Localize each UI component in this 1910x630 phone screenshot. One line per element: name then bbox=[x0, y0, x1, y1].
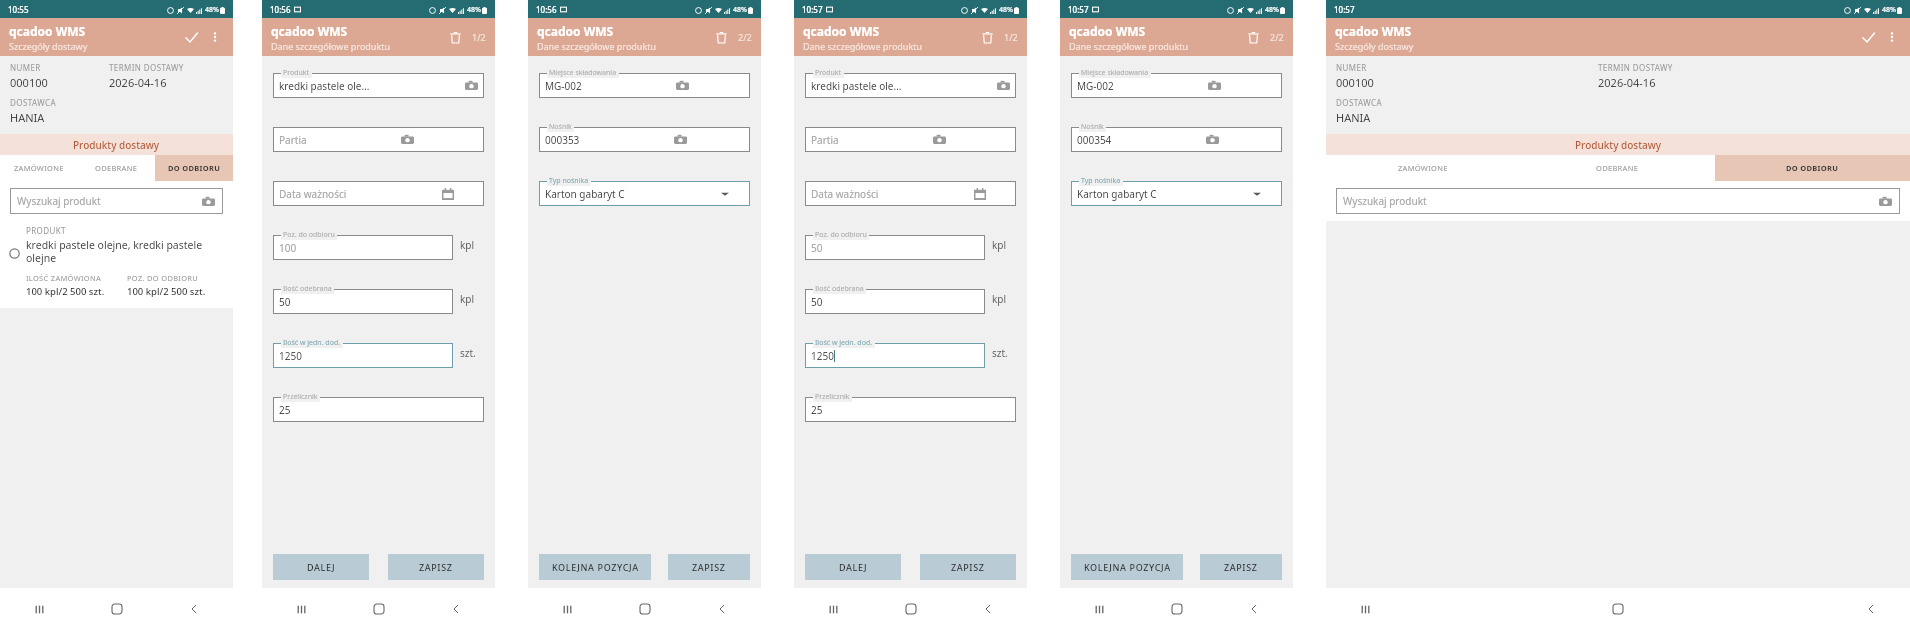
button[interactable]: ZAPISZ bbox=[668, 554, 750, 580]
button[interactable]: Home bbox=[104, 596, 130, 622]
button[interactable]: Scan bbox=[400, 132, 415, 147]
button[interactable]: PRODUKT bbox=[8, 225, 225, 298]
button[interactable]: Home bbox=[1164, 596, 1190, 622]
staticText: Ilość odebrana bbox=[815, 284, 864, 294]
button[interactable]: Recents bbox=[820, 596, 846, 622]
button[interactable]: Wyszukaj produkt bbox=[1343, 188, 1893, 214]
button[interactable]: ODEBRANE bbox=[1520, 155, 1715, 181]
button[interactable]: Scan bbox=[675, 78, 690, 93]
staticText: Produkty dostawy bbox=[73, 138, 160, 152]
button[interactable]: Recents bbox=[26, 596, 52, 622]
staticText: POZ. DO ODBIORU bbox=[127, 273, 199, 283]
staticText: 48% bbox=[1882, 5, 1896, 15]
button[interactable]: ZAMÓWIONE bbox=[1326, 155, 1520, 181]
button[interactable]: Back bbox=[709, 596, 735, 622]
staticText: KOLEJNA POZYCJA bbox=[552, 561, 639, 573]
staticText: Szczegóły dostawy bbox=[9, 40, 88, 52]
staticText: Karton gabaryt C bbox=[545, 187, 625, 201]
staticText: Dane szczegółowe produktu bbox=[537, 40, 657, 52]
button[interactable]: Back bbox=[1858, 596, 1884, 622]
button[interactable]: Home bbox=[632, 596, 658, 622]
button[interactable]: KOLEJNA POZYCJA bbox=[1071, 554, 1183, 580]
staticText: NUMER bbox=[10, 62, 41, 73]
button[interactable]: Scan bbox=[1207, 78, 1222, 93]
staticText: 48% bbox=[205, 5, 219, 15]
staticText: Data ważności bbox=[279, 187, 347, 201]
staticText: TERMIN DOSTAWY bbox=[1598, 62, 1673, 73]
staticText: 2026-04-16 bbox=[1598, 75, 1656, 90]
button[interactable]: Recents bbox=[1086, 596, 1112, 622]
staticText: ZAPISZ bbox=[692, 561, 726, 573]
button[interactable]: Delete bbox=[710, 26, 732, 48]
staticText: DOSTAWCA bbox=[10, 97, 56, 108]
staticText: Produkt bbox=[283, 68, 310, 78]
staticText: 50 bbox=[811, 241, 823, 255]
button[interactable]: Delete bbox=[976, 26, 998, 48]
button[interactable]: ZAPISZ bbox=[920, 554, 1016, 580]
button[interactable]: Scan bbox=[201, 194, 216, 209]
staticText: 10:57 bbox=[1068, 4, 1089, 15]
button[interactable]: Wyszukaj produkt bbox=[17, 188, 216, 214]
staticText: 1/2 bbox=[1004, 31, 1018, 43]
staticText: Dane szczegółowe produktu bbox=[803, 40, 923, 52]
staticText: ZAMÓWIONE bbox=[1398, 163, 1448, 173]
staticText: 10:55 bbox=[8, 4, 29, 15]
button[interactable]: DALEJ bbox=[273, 554, 369, 580]
button[interactable]: Scan bbox=[1205, 132, 1220, 147]
button[interactable]: Back bbox=[181, 596, 207, 622]
button[interactable]: Home bbox=[898, 596, 924, 622]
button[interactable]: Confirm bbox=[1857, 26, 1879, 48]
button[interactable]: Back bbox=[1241, 596, 1267, 622]
staticText: 10:57 bbox=[802, 4, 823, 15]
staticText: 000354 bbox=[1077, 133, 1112, 147]
button[interactable]: More options bbox=[1883, 28, 1901, 46]
button[interactable]: Recents bbox=[1352, 596, 1378, 622]
staticText: Ilość odebrana bbox=[283, 284, 332, 294]
button[interactable]: Scan bbox=[932, 132, 947, 147]
button[interactable]: Scan bbox=[673, 132, 688, 147]
button[interactable]: More options bbox=[206, 28, 224, 46]
button[interactable]: Confirm bbox=[180, 26, 202, 48]
staticText: Nośnik bbox=[549, 122, 572, 132]
staticText: 1/2 bbox=[472, 31, 486, 43]
button[interactable]: Scan bbox=[996, 78, 1011, 93]
button[interactable]: Recents bbox=[554, 596, 580, 622]
button[interactable]: Back bbox=[443, 596, 469, 622]
button[interactable]: DO ODBIORU bbox=[1715, 155, 1910, 181]
button[interactable]: Pick date bbox=[440, 186, 455, 201]
staticText: MG-002 bbox=[545, 79, 582, 93]
staticText: qcadoo WMS bbox=[9, 23, 86, 39]
button[interactable]: DALEJ bbox=[805, 554, 901, 580]
button[interactable]: Recents bbox=[288, 596, 314, 622]
staticText: Poz. do odbioru bbox=[815, 230, 867, 240]
staticText: Miejsce składowania bbox=[1081, 68, 1149, 78]
button[interactable]: Home bbox=[1605, 596, 1631, 622]
button[interactable]: Home bbox=[366, 596, 392, 622]
button[interactable]: KOLEJNA POZYCJA bbox=[539, 554, 651, 580]
button[interactable]: Delete bbox=[444, 26, 466, 48]
button[interactable]: Delete bbox=[1242, 26, 1264, 48]
button[interactable]: Open list bbox=[718, 187, 732, 201]
button[interactable]: ZAMÓWIONE bbox=[0, 155, 77, 181]
button[interactable]: Pick date bbox=[972, 186, 987, 201]
staticText: 25 bbox=[279, 403, 291, 417]
button[interactable]: Open list bbox=[1250, 187, 1264, 201]
staticText: DO ODBIORU bbox=[168, 163, 221, 173]
staticText: qcadoo WMS bbox=[537, 23, 614, 39]
button[interactable]: Scan bbox=[464, 78, 479, 93]
button[interactable]: ODEBRANE bbox=[77, 155, 155, 181]
button[interactable]: ZAPISZ bbox=[388, 554, 484, 580]
staticText: qcadoo WMS bbox=[803, 23, 880, 39]
staticText: NUMER bbox=[1336, 62, 1367, 73]
button[interactable]: Scan bbox=[1878, 194, 1893, 209]
button[interactable]: Back bbox=[975, 596, 1001, 622]
staticText: kpl bbox=[460, 238, 475, 252]
staticText: 100 kpl/2 500 szt. bbox=[26, 285, 105, 298]
staticText: ODEBRANE bbox=[1596, 163, 1639, 173]
staticText: DOSTAWCA bbox=[1336, 97, 1382, 108]
button[interactable]: DO ODBIORU bbox=[155, 155, 233, 181]
staticText: Ilość w jedn. dod. bbox=[283, 338, 341, 348]
staticText: 100 kpl/2 500 szt. bbox=[127, 285, 206, 298]
staticText: ZAMÓWIONE bbox=[14, 163, 64, 173]
button[interactable]: ZAPISZ bbox=[1200, 554, 1282, 580]
